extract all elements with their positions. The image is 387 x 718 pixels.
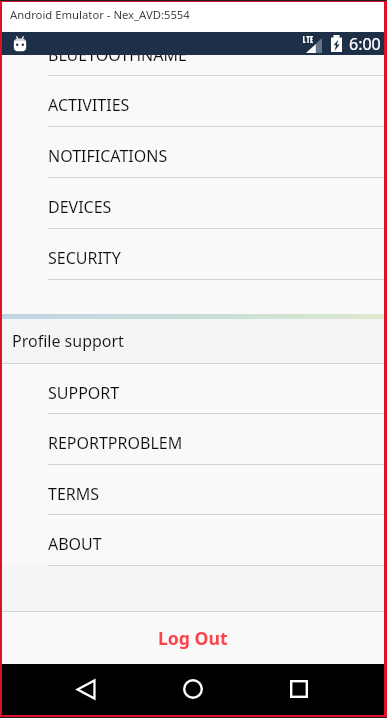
staticText: 6:00 (349, 33, 381, 55)
button[interactable]: ACTIVITIES (2, 76, 384, 127)
staticText: NOTIFICATIONS (48, 145, 168, 167)
staticText: TERMS (48, 483, 100, 505)
staticText: Profile support (12, 330, 124, 352)
staticText: ABOUT (48, 533, 102, 555)
staticText: REPORTPROBLEM (48, 432, 183, 454)
button[interactable]: Back (62, 665, 110, 713)
button[interactable]: Log Out (2, 612, 384, 664)
button[interactable]: Home (169, 665, 217, 713)
staticText: SECURITY (48, 247, 121, 269)
button[interactable]: NOTIFICATIONS (2, 127, 384, 178)
staticText: Android Emulator - Nex_AVD:5554 (10, 7, 190, 22)
button[interactable]: DEVICES (2, 178, 384, 229)
button[interactable]: SUPPORT (2, 364, 384, 414)
staticText: DEVICES (48, 196, 112, 218)
staticText: SUPPORT (48, 382, 120, 404)
button[interactable]: TERMS (2, 465, 384, 515)
staticText: BLUETOOTHNAME (48, 55, 187, 65)
button[interactable]: SECURITY (2, 229, 384, 280)
staticText: ACTIVITIES (48, 94, 130, 116)
staticText: Log Out (158, 626, 228, 650)
button[interactable]: Recent apps (275, 665, 323, 713)
button[interactable]: ABOUT (2, 515, 384, 566)
button[interactable]: REPORTPROBLEM (2, 414, 384, 465)
